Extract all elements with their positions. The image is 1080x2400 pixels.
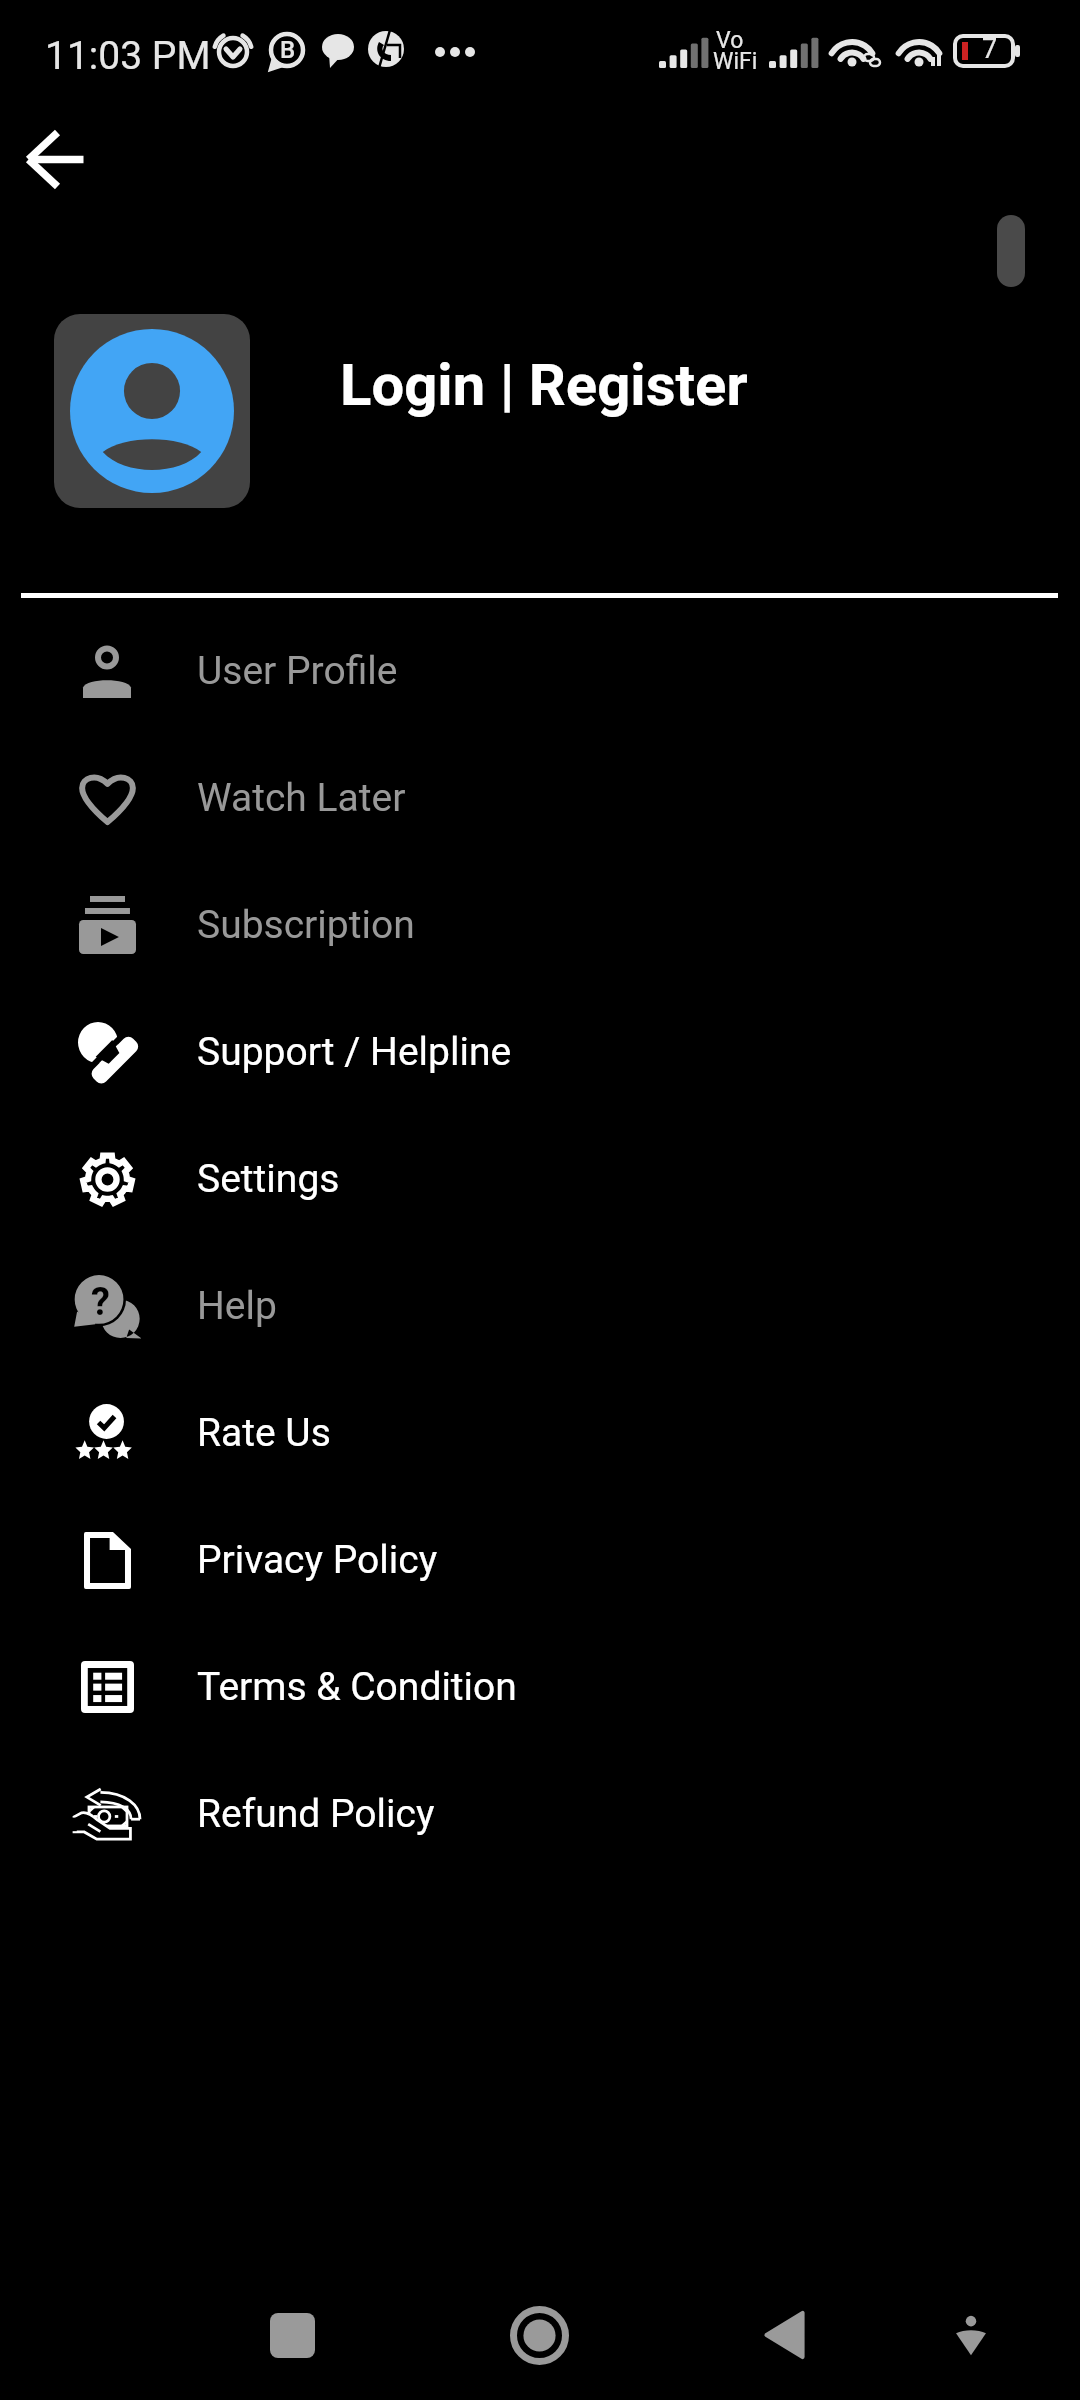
button[interactable]: Hide keyboard bbox=[954, 2314, 988, 2356]
button[interactable]: Login | Register bbox=[340, 330, 840, 440]
staticText: Subscription bbox=[197, 902, 415, 948]
staticText: 11:03 PM bbox=[45, 33, 211, 79]
staticText: WiFi bbox=[713, 48, 758, 75]
staticText: Support / Helpline bbox=[197, 1029, 512, 1075]
button[interactable]: Rate Us bbox=[0, 1369, 1080, 1496]
button[interactable]: Settings bbox=[0, 1115, 1080, 1242]
staticText: Vo bbox=[716, 27, 744, 54]
button[interactable]: Recents bbox=[270, 2313, 315, 2358]
button[interactable]: Privacy Policy bbox=[0, 1496, 1080, 1623]
staticText: Refund Policy bbox=[197, 1791, 435, 1837]
staticText: Login | Register bbox=[340, 351, 748, 419]
button[interactable]: Profile avatar bbox=[54, 314, 250, 508]
button[interactable]: User Profile bbox=[0, 607, 1080, 734]
button[interactable]: Back bbox=[10, 113, 100, 203]
button[interactable]: Watch Later bbox=[0, 734, 1080, 861]
button[interactable]: ? bbox=[0, 1242, 1080, 1369]
staticText: Privacy Policy bbox=[197, 1537, 438, 1583]
staticText: ? bbox=[91, 1280, 110, 1325]
staticText: Watch Later bbox=[197, 775, 406, 821]
button[interactable]: Home bbox=[510, 2306, 569, 2365]
button[interactable]: Refund Policy bbox=[0, 1750, 1080, 1877]
button[interactable]: Back bbox=[764, 2312, 805, 2358]
staticText: Rate Us bbox=[197, 1410, 331, 1456]
staticText: Terms & Condition bbox=[197, 1664, 517, 1710]
staticText: Help bbox=[197, 1283, 277, 1329]
button[interactable]: Subscription bbox=[0, 861, 1080, 988]
button[interactable]: Terms & Condition bbox=[0, 1623, 1080, 1750]
staticText: B bbox=[280, 36, 296, 64]
button[interactable]: Support / Helpline bbox=[0, 988, 1080, 1115]
staticText: Settings bbox=[197, 1156, 340, 1202]
staticText: User Profile bbox=[197, 648, 398, 694]
staticText: 7 bbox=[982, 33, 998, 65]
